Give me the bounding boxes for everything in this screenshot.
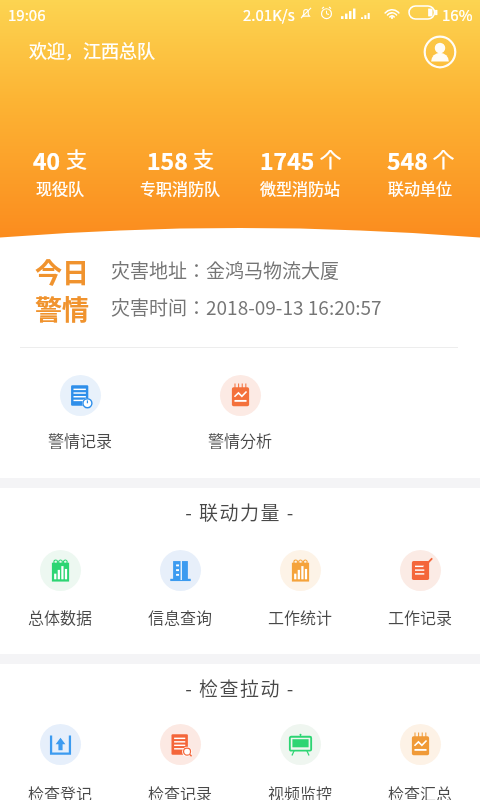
button[interactable]: 40: [0, 143, 120, 199]
staticText: 信息查询: [148, 605, 213, 628]
button[interactable]: 警情记录: [0, 375, 160, 451]
staticText: 现役队: [36, 176, 85, 199]
button[interactable]: 个人中心: [423, 35, 457, 69]
button[interactable]: 总体数据: [0, 550, 120, 628]
staticText: 专职消防队: [140, 176, 221, 199]
staticText: - 联动力量 -: [0, 498, 480, 526]
staticText: 联动单位: [388, 176, 453, 199]
staticText: 灾害时间：2018-09-13 16:20:57: [111, 293, 382, 321]
button[interactable]: 工作统计: [240, 550, 360, 628]
button[interactable]: 548: [360, 143, 480, 199]
button[interactable]: 信息查询: [120, 550, 240, 628]
button[interactable]: 158: [120, 143, 240, 199]
button[interactable]: 工作记录: [360, 550, 480, 628]
staticText: 总体数据: [28, 605, 93, 628]
staticText: 工作统计: [268, 605, 333, 628]
button[interactable]: 警情分析: [160, 375, 320, 451]
staticText: 2.01K/s: [243, 4, 295, 26]
button[interactable]: 检查登记: [0, 724, 120, 800]
staticText: 警情记录: [48, 428, 113, 451]
staticText: 1745: [260, 143, 315, 176]
staticText: 个: [320, 143, 341, 173]
staticText: 支: [193, 143, 214, 173]
staticText: 视频监控: [268, 781, 333, 800]
staticText: 40: [33, 143, 61, 176]
staticText: 工作记录: [388, 605, 453, 628]
staticText: 19:06: [8, 4, 46, 26]
staticText: 个: [433, 143, 454, 173]
staticText: 检查登记: [28, 781, 93, 800]
staticText: 今日: [35, 252, 89, 291]
staticText: - 检查拉动 -: [0, 674, 480, 702]
staticText: 16%: [442, 4, 473, 26]
staticText: 支: [66, 143, 87, 173]
button[interactable]: 检查汇总: [360, 724, 480, 800]
staticText: 灾害地址：金鸿马物流大厦: [111, 256, 340, 284]
button[interactable]: 1745: [240, 143, 360, 199]
staticText: 158: [147, 143, 188, 176]
button[interactable]: 视频监控: [240, 724, 360, 800]
staticText: 检查记录: [148, 781, 213, 800]
staticText: 检查汇总: [388, 781, 453, 800]
staticText: 警情分析: [208, 428, 273, 451]
staticText: 警情: [35, 289, 89, 328]
button[interactable]: 检查记录: [120, 724, 240, 800]
staticText: 微型消防站: [260, 176, 341, 199]
staticText: 548: [387, 143, 428, 176]
staticText: 欢迎，江西总队: [29, 37, 155, 63]
